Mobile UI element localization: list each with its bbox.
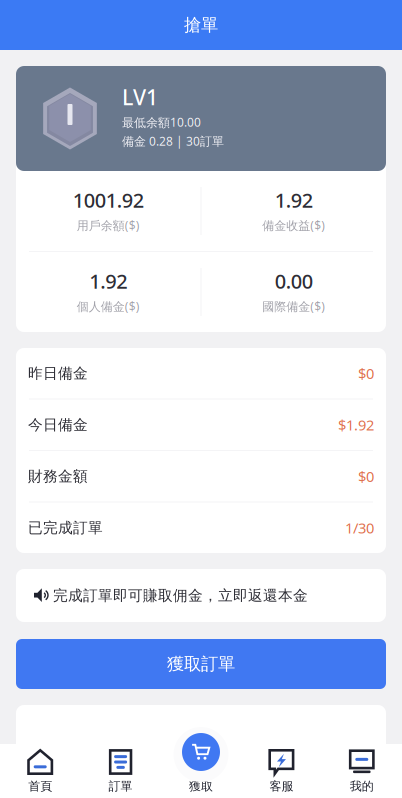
button[interactable]: 已完成訂單 <box>16 502 386 553</box>
button[interactable]: 首頁 <box>0 744 80 798</box>
staticText: 我的 <box>350 779 374 794</box>
button[interactable]: 獲取 <box>182 733 220 771</box>
staticText: 1001.92 <box>73 187 144 213</box>
staticText: $0 <box>358 466 374 486</box>
button[interactable]: 獲取訂單 <box>0 639 402 689</box>
button[interactable]: 財務金額 <box>16 451 386 501</box>
staticText: 搶單 <box>184 14 218 36</box>
button[interactable]: 我的 <box>322 744 402 798</box>
staticText: $0 <box>358 363 374 383</box>
staticText: 國際備金($) <box>262 298 325 314</box>
staticText: 0.00 <box>275 268 313 294</box>
staticText: 1.92 <box>89 268 127 294</box>
staticText: $1.92 <box>338 415 374 434</box>
button[interactable]: 昨日備金 <box>16 348 386 398</box>
staticText: 最低余額10.00 <box>122 114 201 130</box>
button[interactable]: 今日備金 <box>16 399 386 450</box>
staticText: 今日備金 <box>28 416 88 434</box>
staticText: 1.92 <box>275 187 313 213</box>
staticText: LV1 <box>122 83 158 111</box>
staticText: 獲取 <box>189 779 213 794</box>
button[interactable]: 訂單 <box>80 744 161 798</box>
staticText: 完成訂單即可賺取佣金，立即返還本金 <box>53 586 308 604</box>
staticText: 備金 0.28 | 30訂單 <box>122 133 224 149</box>
staticText: 訂單 <box>109 779 133 794</box>
staticText: 1/30 <box>345 518 374 537</box>
button[interactable]: 獲取 <box>161 744 241 798</box>
staticText: 個人備金($) <box>77 298 140 314</box>
button[interactable]: 客服 <box>241 744 322 798</box>
staticText: 昨日備金 <box>28 364 88 382</box>
staticText: 客服 <box>269 779 293 794</box>
staticText: 已完成訂單 <box>28 519 103 537</box>
staticText: 獲取訂單 <box>167 653 235 675</box>
staticText: 首頁 <box>28 779 52 794</box>
staticText: 用戶余額($) <box>77 217 140 233</box>
staticText: 財務金額 <box>28 467 88 485</box>
staticText: 備金收益($) <box>262 217 325 233</box>
